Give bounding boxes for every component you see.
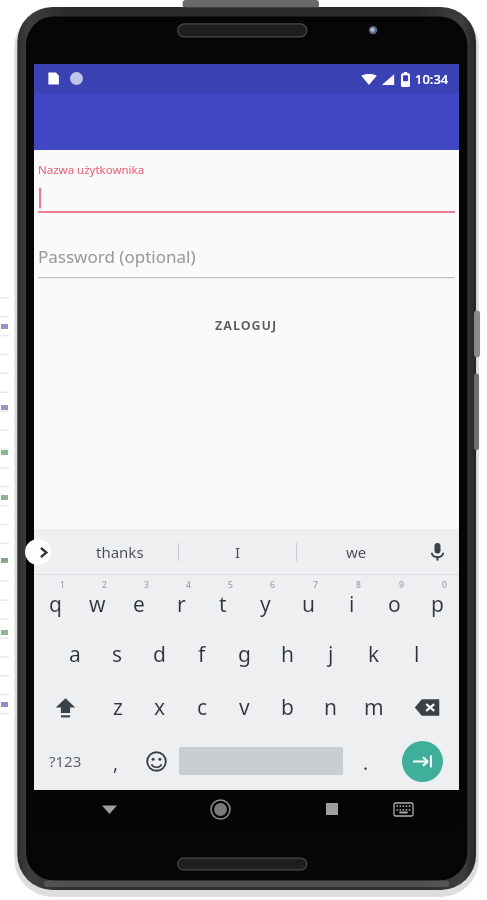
staticText: i [349, 590, 355, 619]
staticText: a [69, 640, 81, 669]
staticText: 3 [144, 579, 149, 591]
staticText: 8 [356, 579, 361, 591]
staticText: 1 [60, 579, 65, 591]
button[interactable]: c [181, 681, 223, 734]
button[interactable]: ZALOGUJ [36, 308, 457, 342]
button[interactable]: Recent apps [305, 790, 358, 828]
staticText: c [197, 693, 208, 722]
button[interactable]: 7 [287, 575, 330, 628]
staticText: s [112, 640, 123, 669]
staticText: p [431, 590, 444, 619]
staticText: x [154, 693, 166, 722]
staticText: 4 [186, 579, 191, 591]
button[interactable]: I [179, 529, 297, 575]
button[interactable]: Back [83, 790, 136, 828]
staticText: 6 [270, 579, 275, 591]
staticText: v [239, 693, 250, 722]
button[interactable]: Backspace [395, 681, 459, 734]
button[interactable]: Voice input [415, 529, 459, 575]
staticText: . [363, 750, 369, 776]
button[interactable]: v [223, 681, 266, 734]
button[interactable]: f [180, 628, 223, 681]
button[interactable]: l [395, 628, 438, 681]
staticText: ZALOGUJ [215, 317, 278, 334]
button[interactable]: 5 [202, 575, 244, 628]
button[interactable]: a [54, 628, 96, 681]
staticText: 7 [313, 579, 318, 591]
staticText: w [89, 590, 106, 619]
staticText: y [260, 590, 271, 619]
button[interactable]: 6 [244, 575, 287, 628]
button[interactable]: d [138, 628, 180, 681]
button[interactable]: Switch keyboard [377, 790, 430, 828]
staticText: z [113, 693, 123, 722]
button[interactable]: m [352, 681, 395, 734]
staticText: g [238, 640, 251, 669]
button[interactable]: h [266, 628, 309, 681]
staticText: , [113, 750, 119, 776]
button[interactable]: ?123 [34, 734, 96, 788]
button[interactable]: Emoji [136, 734, 176, 788]
button[interactable]: , [96, 734, 136, 788]
button[interactable]: 1 [34, 575, 76, 628]
button[interactable]: Home [194, 790, 247, 828]
button[interactable]: j [309, 628, 352, 681]
button[interactable]: thanks [60, 529, 179, 575]
button[interactable]: Shift [34, 681, 97, 734]
button[interactable]: 2 [76, 575, 118, 628]
staticText: f [198, 640, 206, 669]
button[interactable]: More suggestions [25, 539, 51, 565]
staticText: 10:34 [415, 70, 449, 88]
staticText: we [346, 542, 367, 562]
staticText: 9 [399, 579, 404, 591]
staticText: Password (optional) [38, 245, 196, 268]
staticText: k [368, 640, 380, 669]
staticText: d [153, 640, 166, 669]
button[interactable]: s [96, 628, 138, 681]
button[interactable]: 0 [416, 575, 459, 628]
staticText: j [328, 640, 334, 669]
button[interactable]: z [97, 681, 139, 734]
button[interactable]: x [139, 681, 181, 734]
button[interactable]: g [223, 628, 266, 681]
staticText: e [133, 590, 145, 619]
button[interactable]: 8 [330, 575, 373, 628]
staticText: l [414, 640, 420, 669]
staticText: 2 [102, 579, 107, 591]
button[interactable]: Password (optional) [36, 245, 457, 278]
button[interactable]: Enter [386, 734, 459, 788]
staticText: 0 [442, 579, 447, 591]
staticText: ?123 [49, 751, 82, 771]
staticText: thanks [96, 542, 144, 562]
staticText: r [177, 590, 186, 619]
button[interactable]: b [266, 681, 309, 734]
button[interactable]: 4 [160, 575, 202, 628]
staticText: b [281, 693, 294, 722]
button[interactable]: k [352, 628, 395, 681]
button[interactable]: we [297, 529, 415, 575]
staticText: Nazwa użytkownika [38, 162, 145, 178]
button[interactable]: . [346, 734, 386, 788]
staticText: q [49, 590, 62, 619]
staticText: o [388, 590, 401, 619]
staticText: t [219, 590, 227, 619]
button[interactable]: n [309, 681, 352, 734]
staticText: h [281, 640, 294, 669]
staticText: m [364, 693, 384, 722]
button[interactable]: 3 [118, 575, 160, 628]
staticText: n [324, 693, 337, 722]
button[interactable]: Nazwa użytkownika [36, 162, 457, 213]
staticText: I [235, 542, 241, 562]
button[interactable]: 9 [373, 575, 416, 628]
staticText: 5 [228, 579, 233, 591]
staticText: u [302, 590, 315, 619]
